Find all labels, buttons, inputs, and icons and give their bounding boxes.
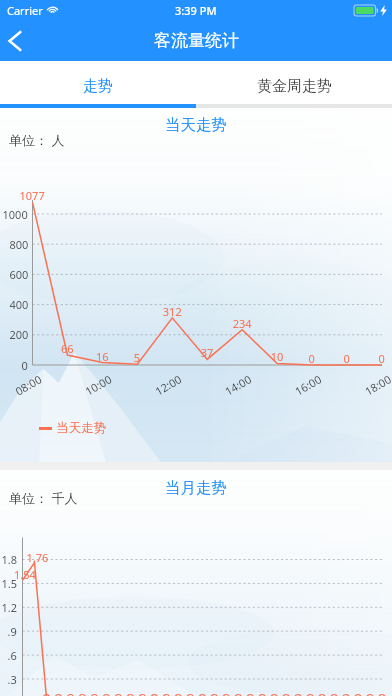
button[interactable]: 黄金周走势: [196, 68, 392, 104]
staticText: 黄金周走势: [257, 77, 332, 96]
button[interactable]: 走势: [0, 68, 196, 104]
staticText: Carrier: [7, 3, 43, 18]
button[interactable]: Back: [0, 20, 40, 61]
staticText: 客流量统计: [154, 30, 239, 51]
staticText: 单位： 人: [9, 131, 65, 149]
staticText: 单位： 千人: [9, 489, 78, 507]
staticText: 当天走势: [56, 420, 106, 436]
staticText: 3:39 PM: [175, 3, 217, 18]
staticText: 当月走势: [0, 478, 392, 498]
staticText: 走势: [83, 77, 113, 96]
staticText: 当天走势: [0, 115, 392, 135]
